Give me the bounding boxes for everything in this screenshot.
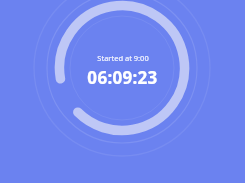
staticText: 06:09:23 (87, 66, 158, 89)
staticText: Started at 9:00 (97, 53, 149, 63)
button[interactable]: Timer progress ring (0, 0, 245, 183)
